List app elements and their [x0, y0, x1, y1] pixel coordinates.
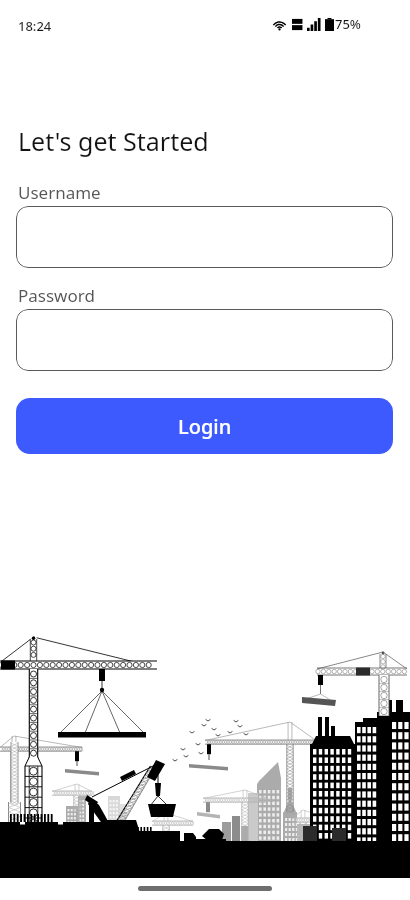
staticText: 75%: [335, 15, 361, 33]
button[interactable]: [16, 309, 393, 371]
staticText: Let's get Started: [18, 124, 209, 158]
staticText: Username: [18, 181, 101, 204]
staticText: 18:24: [18, 17, 52, 35]
button[interactable]: [16, 206, 393, 268]
staticText: Login: [178, 413, 232, 440]
staticText: Password: [18, 284, 95, 307]
button[interactable]: Login: [16, 398, 393, 454]
